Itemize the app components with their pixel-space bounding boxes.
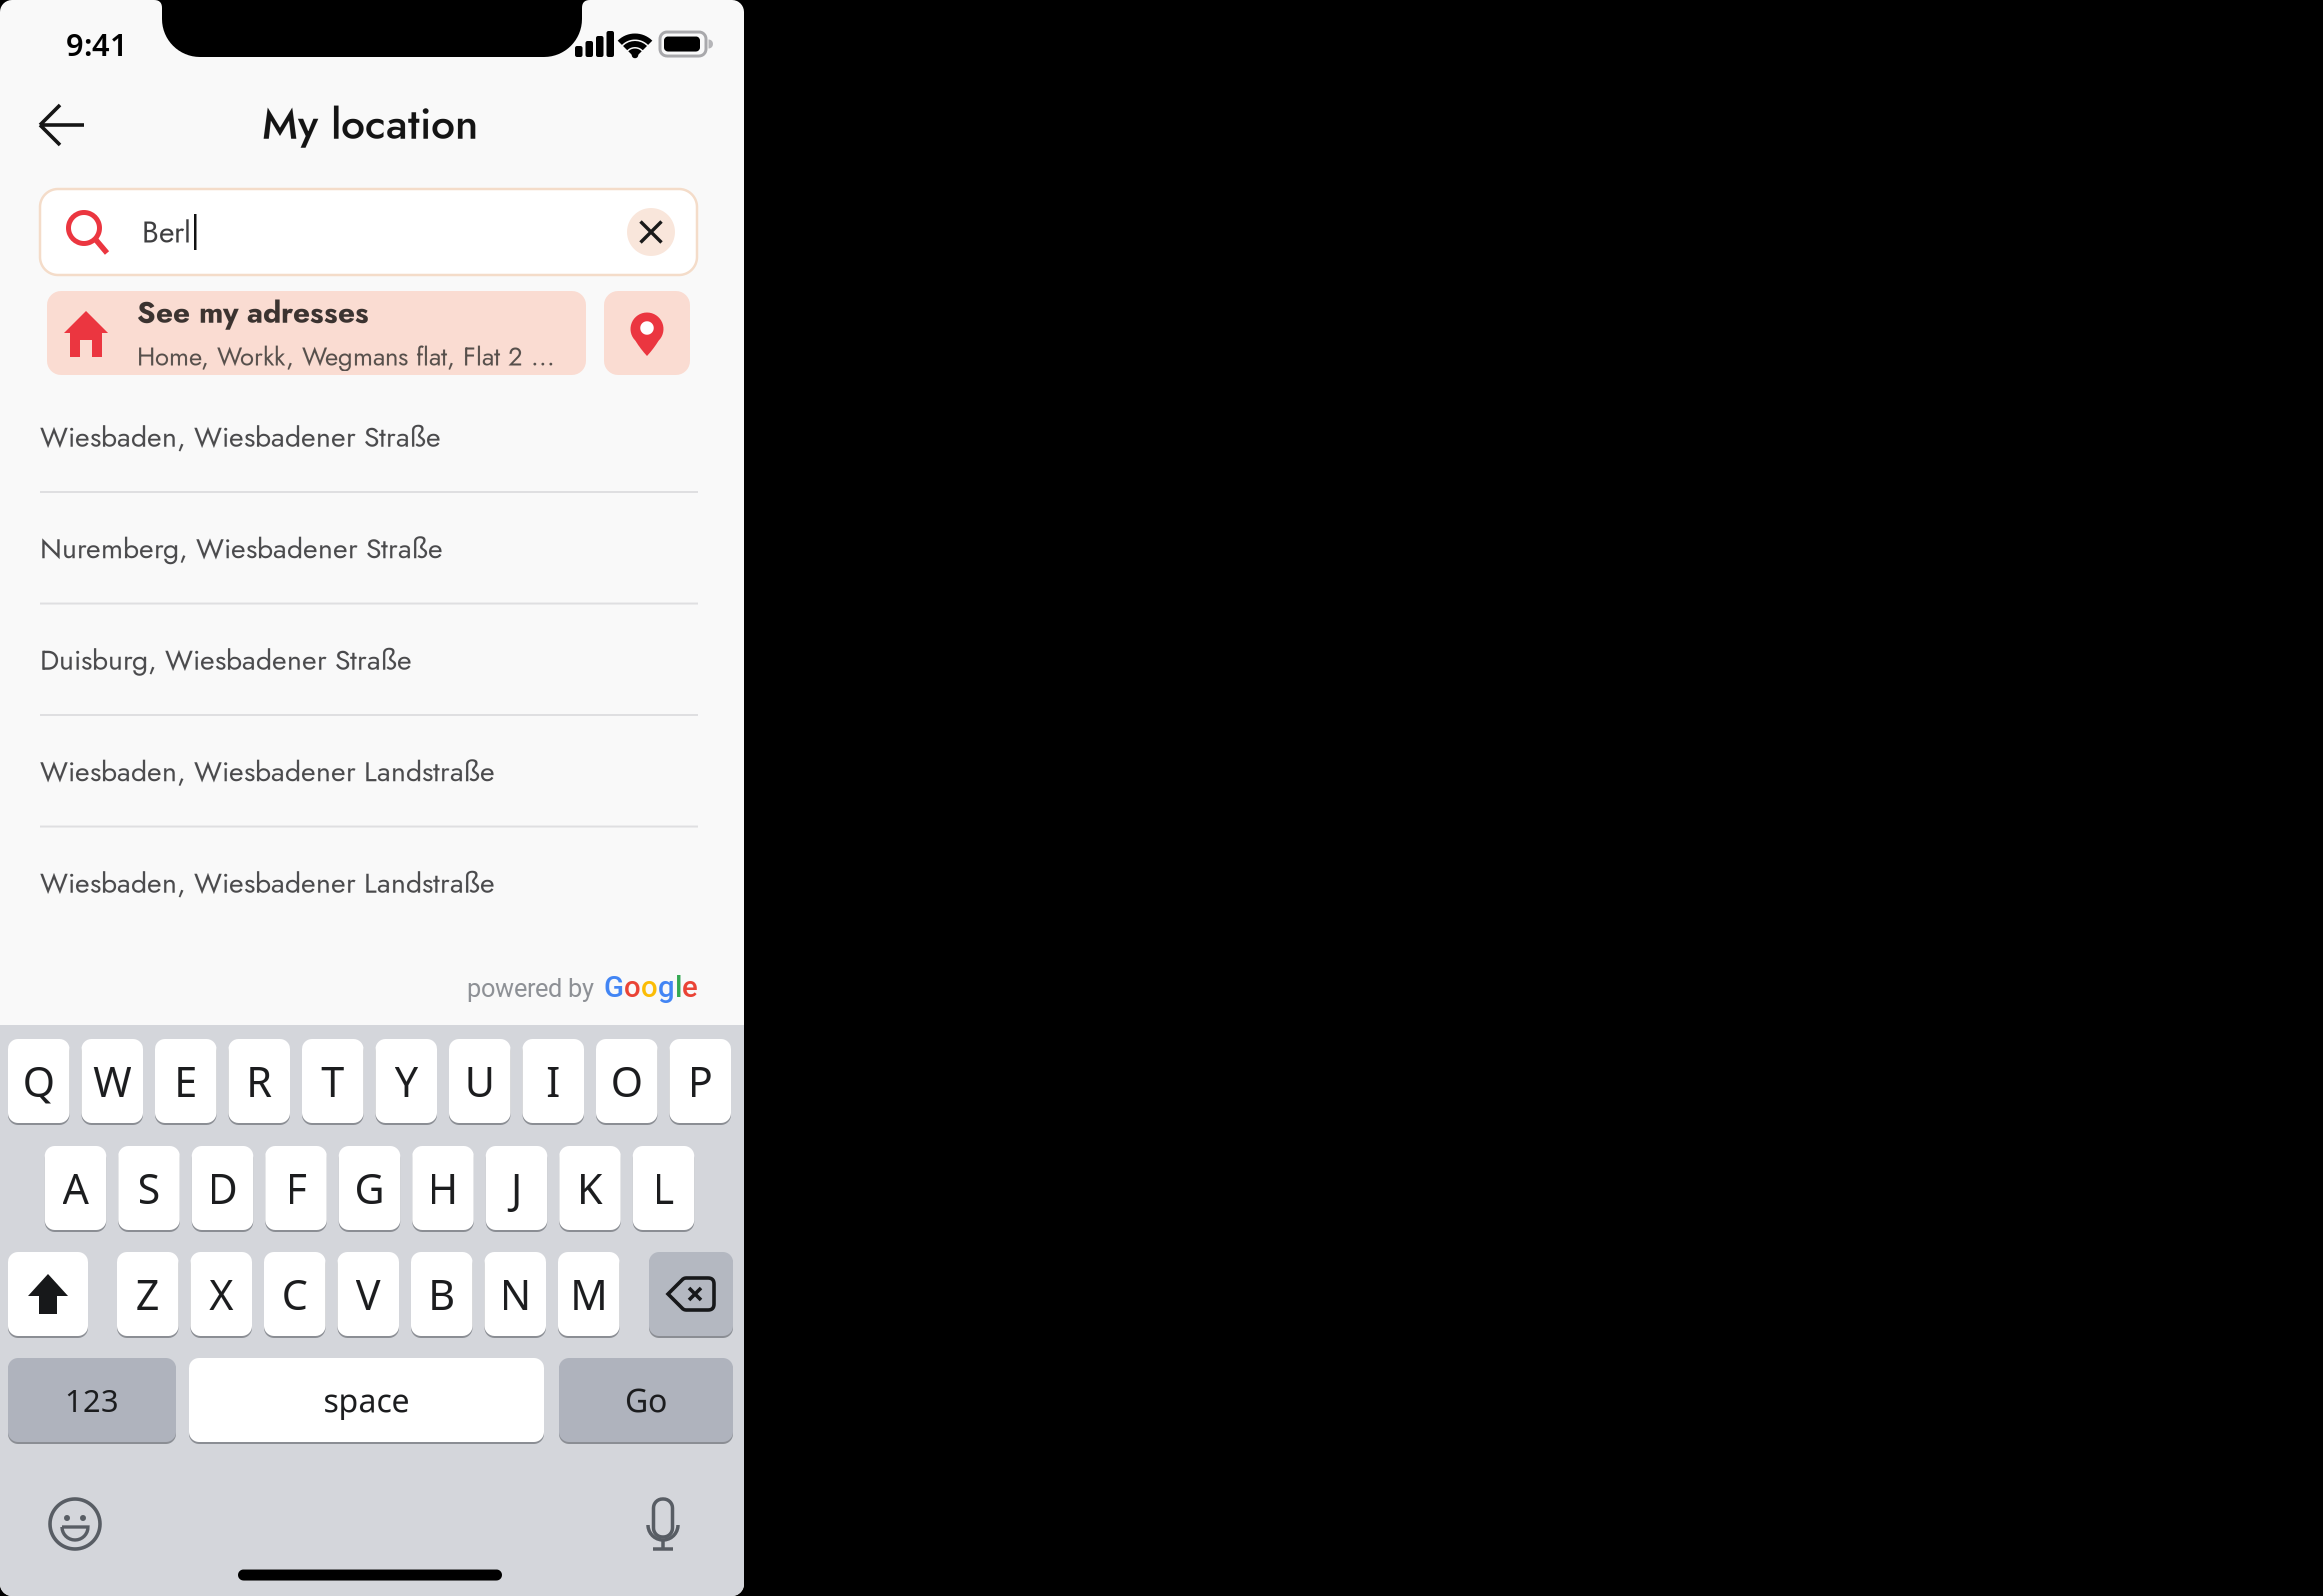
button[interactable]: Go xyxy=(559,1357,733,1443)
staticText: S xyxy=(137,1161,160,1215)
staticText: L xyxy=(652,1161,674,1215)
staticText: P xyxy=(688,1054,713,1108)
staticText: l xyxy=(675,970,682,1004)
button[interactable]: Clear search text xyxy=(627,208,675,256)
staticText: Nuremberg, Wiesbadener Straße xyxy=(40,528,443,569)
staticText: U xyxy=(465,1054,495,1108)
staticText: C xyxy=(282,1267,308,1321)
button[interactable]: L xyxy=(633,1145,694,1231)
button[interactable]: G xyxy=(339,1145,400,1231)
staticText: A xyxy=(62,1161,88,1215)
button[interactable]: F xyxy=(265,1145,327,1231)
button[interactable]: Wiesbaden, Wiesbadener Landstraße xyxy=(0,716,744,826)
button[interactable]: R xyxy=(228,1038,290,1124)
button[interactable]: T xyxy=(302,1038,363,1124)
staticText: 123 xyxy=(65,1380,119,1420)
button[interactable]: Shift xyxy=(8,1251,88,1337)
staticText: G xyxy=(354,1161,384,1215)
staticText: D xyxy=(207,1161,237,1215)
button[interactable]: Dictate xyxy=(647,1498,679,1550)
button[interactable]: Wiesbaden, Wiesbadener Landstraße xyxy=(0,828,744,938)
staticText: J xyxy=(511,1161,522,1215)
staticText: Y xyxy=(395,1054,418,1108)
staticText: e xyxy=(682,970,698,1004)
button[interactable]: Back xyxy=(20,104,104,146)
button[interactable]: Delete xyxy=(649,1251,733,1337)
button[interactable]: 123 xyxy=(8,1357,176,1443)
button[interactable]: S xyxy=(118,1145,180,1231)
button[interactable]: space xyxy=(189,1357,544,1443)
button[interactable]: B xyxy=(411,1251,472,1337)
button[interactable]: U xyxy=(449,1038,510,1124)
staticText: g xyxy=(658,970,675,1004)
staticText: V xyxy=(356,1267,381,1321)
staticText: G xyxy=(604,970,624,1004)
button[interactable]: See my adresses xyxy=(47,291,586,375)
staticText: powered by xyxy=(467,973,594,1003)
button[interactable]: Nuremberg, Wiesbadener Straße xyxy=(0,493,744,603)
staticText: My location xyxy=(262,93,478,155)
staticText: Go xyxy=(625,1379,667,1421)
button[interactable]: Z xyxy=(117,1251,178,1337)
staticText: B xyxy=(428,1267,455,1321)
button[interactable]: H xyxy=(412,1145,474,1231)
staticText: o xyxy=(624,970,641,1004)
staticText: See my adresses xyxy=(137,291,369,334)
staticText: Berl xyxy=(142,210,191,254)
button[interactable]: P xyxy=(669,1038,731,1124)
staticText: K xyxy=(577,1161,603,1215)
staticText: O xyxy=(611,1054,643,1108)
button[interactable]: Q xyxy=(8,1038,69,1124)
button[interactable]: Y xyxy=(375,1038,437,1124)
button[interactable]: Duisburg, Wiesbadener Straße xyxy=(0,605,744,715)
button[interactable]: K xyxy=(559,1145,621,1231)
button[interactable]: J xyxy=(486,1145,547,1231)
button[interactable]: I xyxy=(522,1038,584,1124)
button[interactable]: Wiesbaden, Wiesbadener Straße xyxy=(0,382,744,492)
staticText: Duisburg, Wiesbadener Straße xyxy=(40,640,412,680)
staticText: W xyxy=(93,1054,131,1108)
button[interactable]: N xyxy=(484,1251,546,1337)
staticText: o xyxy=(641,970,658,1004)
button[interactable]: V xyxy=(337,1251,399,1337)
staticText: Wiesbaden, Wiesbadener Straße xyxy=(40,417,441,457)
button[interactable]: C xyxy=(264,1251,325,1337)
button[interactable]: A xyxy=(45,1145,106,1231)
staticText: M xyxy=(570,1267,607,1321)
staticText: N xyxy=(500,1267,531,1321)
button[interactable]: M xyxy=(558,1251,619,1337)
button[interactable]: W xyxy=(81,1038,143,1124)
button[interactable]: Emoji xyxy=(50,1499,100,1549)
button[interactable]: O xyxy=(596,1038,657,1124)
staticText: F xyxy=(285,1161,306,1215)
staticText: Z xyxy=(136,1267,160,1321)
staticText: Wiesbaden, Wiesbadener Landstraße xyxy=(40,751,495,792)
staticText: space xyxy=(323,1379,409,1421)
staticText: T xyxy=(321,1054,344,1108)
staticText: I xyxy=(546,1054,560,1108)
button[interactable]: Use my current location xyxy=(604,291,690,375)
button[interactable]: X xyxy=(190,1251,252,1337)
button[interactable]: D xyxy=(192,1145,253,1231)
staticText: H xyxy=(427,1161,458,1215)
staticText: E xyxy=(174,1054,197,1108)
staticText: Wiesbaden, Wiesbadener Landstraße xyxy=(40,863,495,903)
button[interactable]: E xyxy=(155,1038,216,1124)
staticText: 9:41 xyxy=(66,24,128,64)
staticText: X xyxy=(209,1267,233,1321)
staticText: Q xyxy=(23,1054,55,1108)
staticText: R xyxy=(246,1054,272,1108)
staticText: Home, Workk, Wegmans flat, Flat 2 ... xyxy=(137,338,555,375)
